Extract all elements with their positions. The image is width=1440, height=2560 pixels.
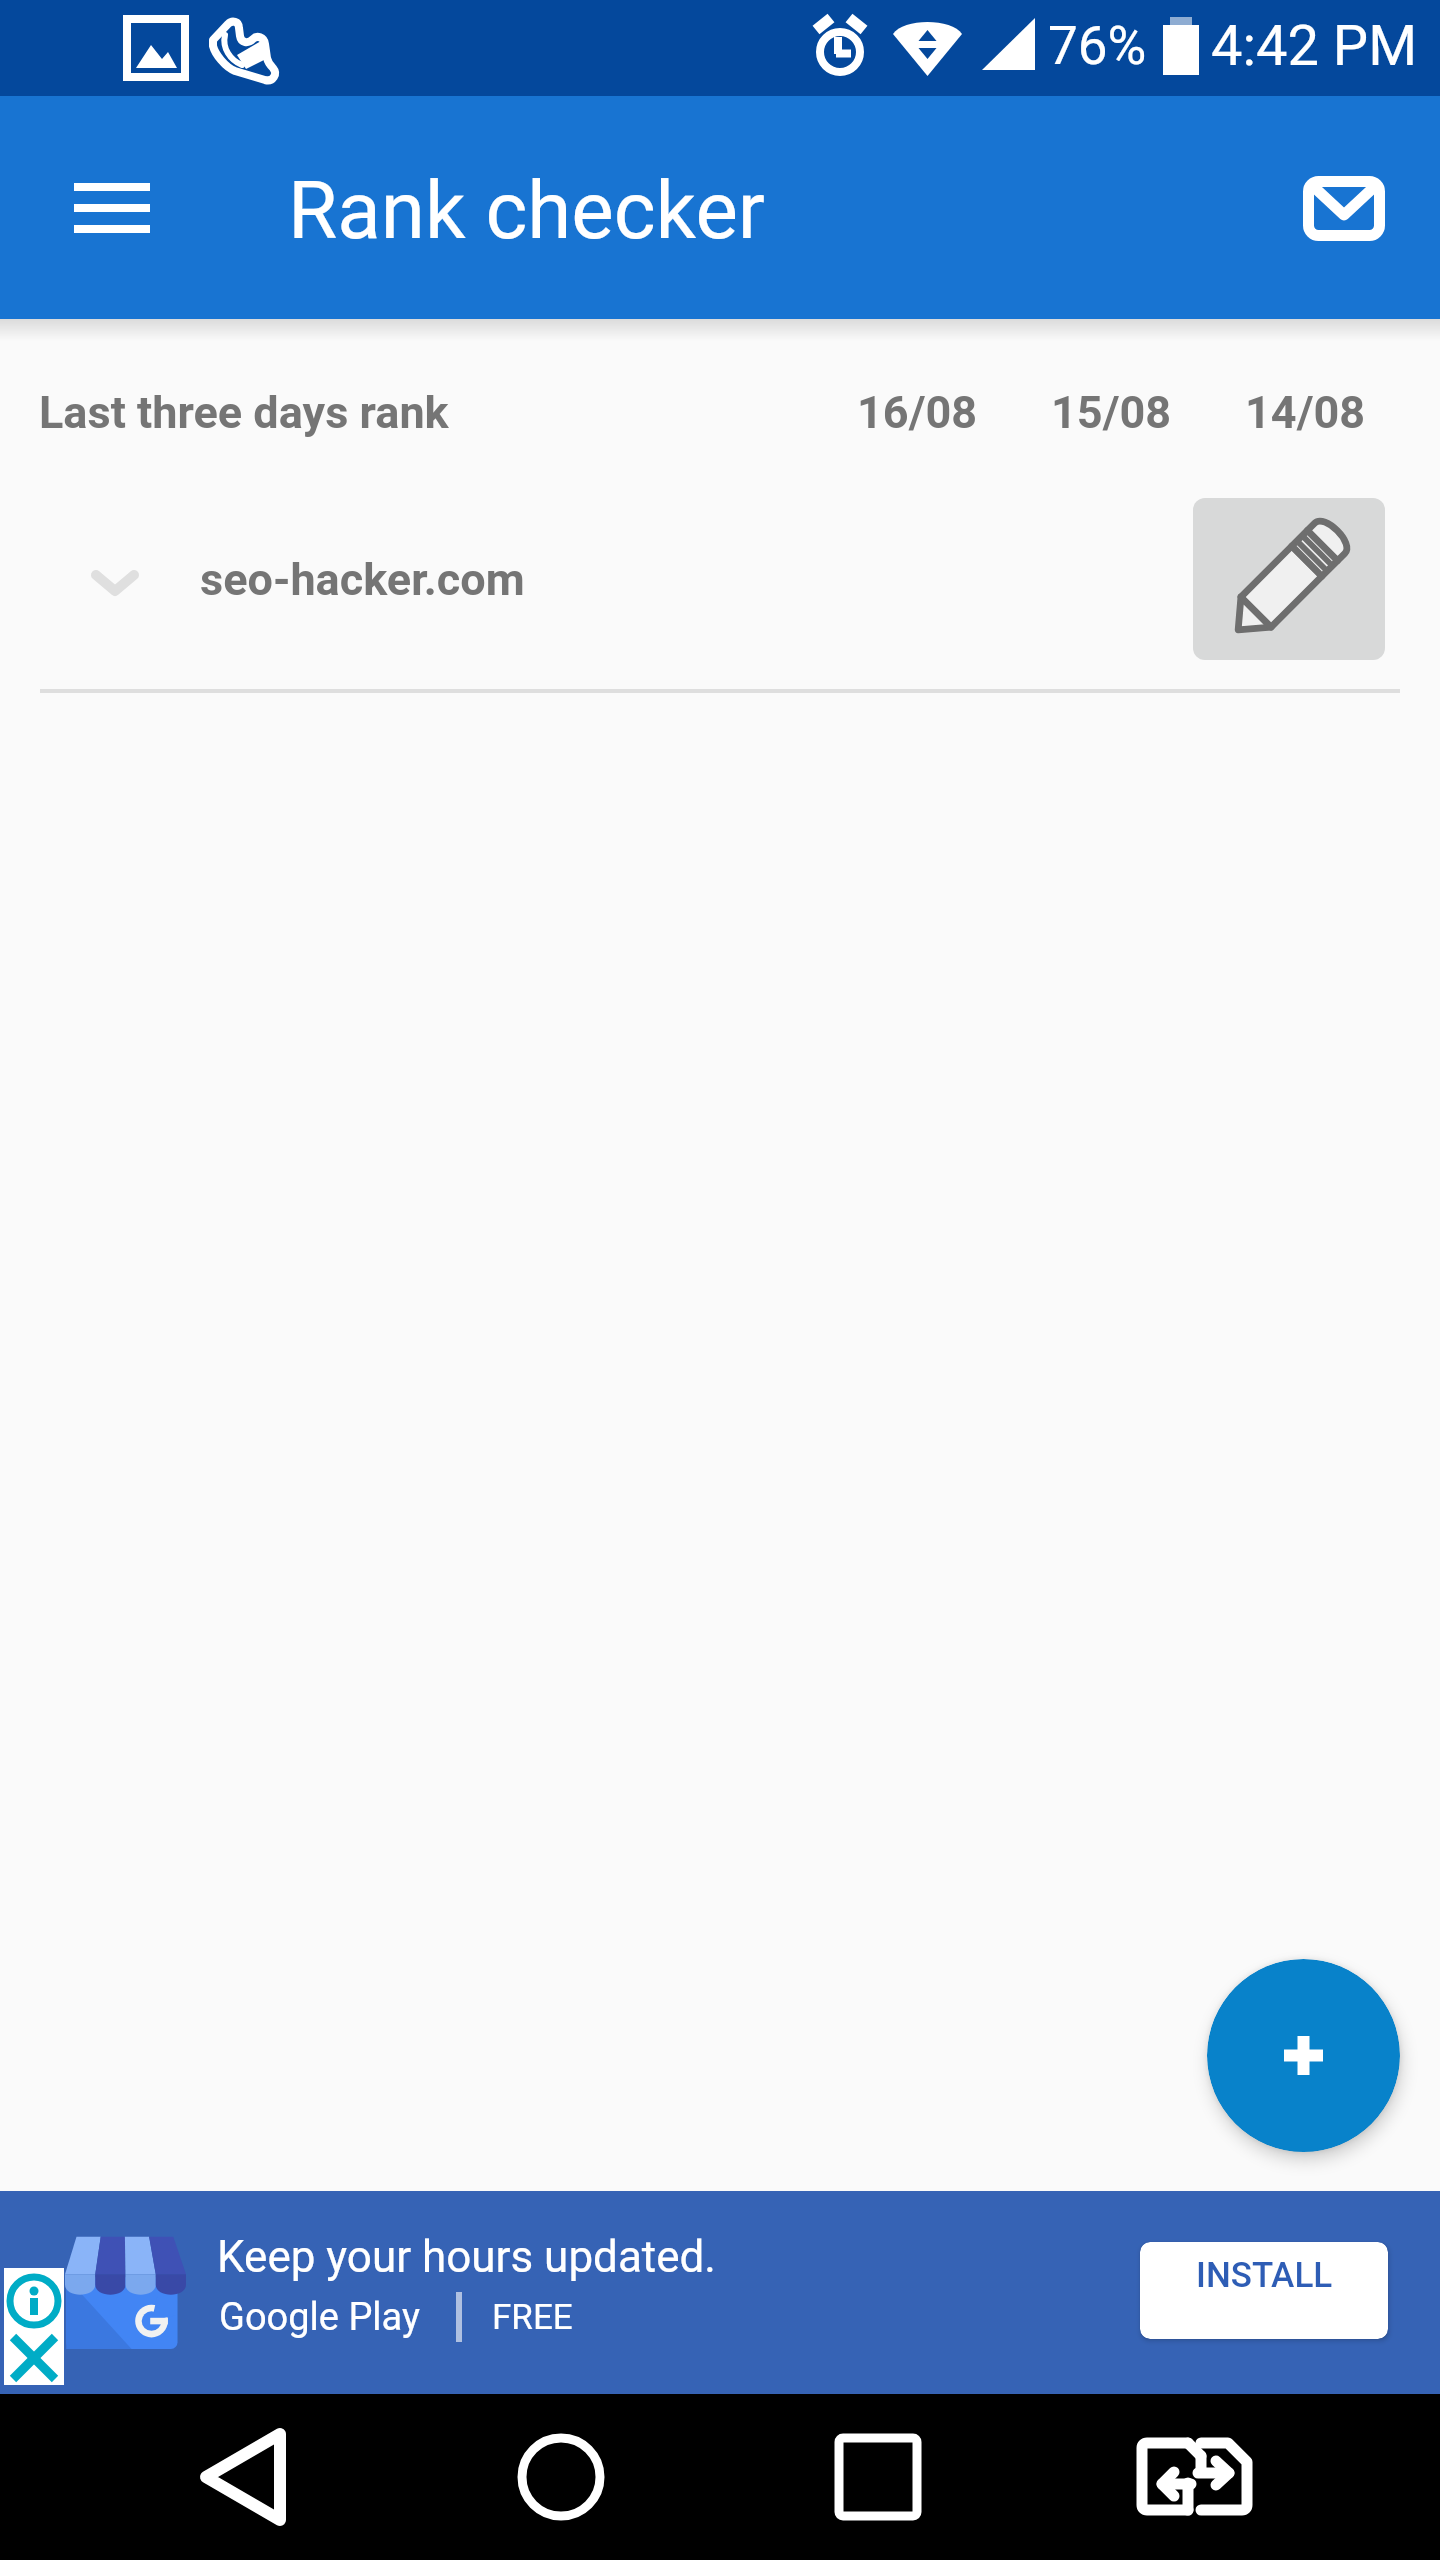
button[interactable]: Recent apps <box>738 2394 1018 2560</box>
button[interactable]: Rotate screen <box>1052 2394 1332 2560</box>
staticText: 15/08 <box>1051 386 1172 439</box>
button[interactable]: Ad info and close <box>4 2268 64 2385</box>
staticText: 4:42 PM <box>1211 13 1418 79</box>
button[interactable]: Open navigation menu <box>38 134 186 282</box>
staticText: 16/08 <box>857 386 978 439</box>
staticText: INSTALL <box>1196 2255 1333 2296</box>
button[interactable]: seo-hacker.com <box>0 480 1440 678</box>
staticText: Rank checker <box>288 164 765 258</box>
button[interactable]: Home <box>422 2394 702 2560</box>
staticText: 14/08 <box>1245 386 1366 439</box>
staticText: seo-hacker.com <box>200 553 525 606</box>
button[interactable]: Mail <box>1270 134 1418 282</box>
staticText: Last three days rank <box>39 386 449 439</box>
staticText: Keep your hours updated. <box>217 2231 716 2283</box>
staticText: FREE <box>492 2297 573 2338</box>
button[interactable]: Back <box>105 2394 385 2560</box>
button[interactable]: INSTALL <box>1140 2242 1388 2339</box>
staticText: Google Play <box>219 2295 420 2340</box>
button[interactable]: Add <box>1207 1959 1400 2152</box>
staticText: 76% <box>1048 15 1147 77</box>
button[interactable]: Edit <box>1193 498 1385 660</box>
